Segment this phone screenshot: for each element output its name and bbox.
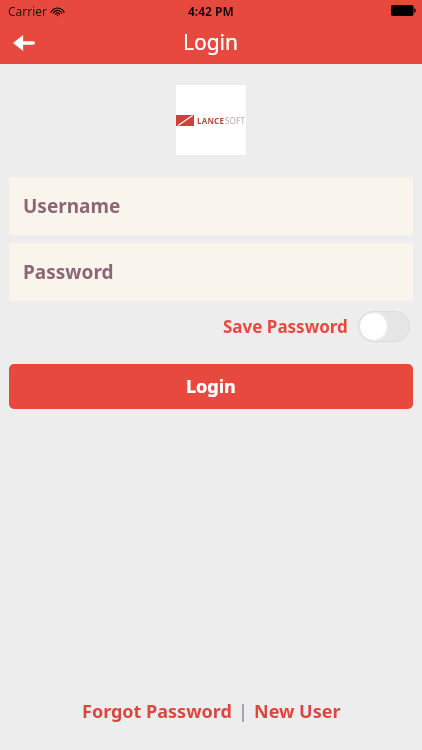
button[interactable]: Password [9,243,413,301]
button[interactable]: New User [252,695,343,728]
staticText: Password [23,259,114,285]
staticText: New User [254,699,341,724]
staticText: Forgot Password [82,699,232,724]
button[interactable]: Login [9,364,413,409]
staticText: | [238,699,248,724]
other: Save Password toggle [358,311,410,342]
staticText: Save Password [223,315,348,338]
button[interactable]: Back [0,21,48,64]
button[interactable]: Save Password [223,311,410,342]
button[interactable]: Username [9,177,413,235]
staticText: 4:42 PM [188,3,234,19]
staticText: Login [186,374,236,399]
staticText: Login [183,28,239,57]
button[interactable]: Forgot Password [80,695,234,728]
staticText: SOFT [225,115,246,126]
staticText: LANCE [197,115,225,126]
staticText: Carrier [8,3,48,19]
staticText: Username [23,193,121,219]
